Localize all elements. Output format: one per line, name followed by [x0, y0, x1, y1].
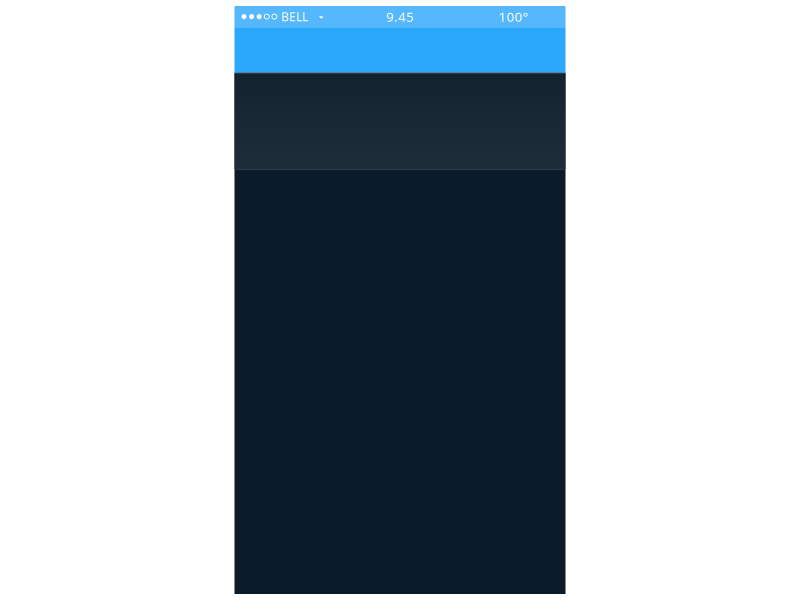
staticText: BELL — [281, 9, 308, 24]
staticText: 100° — [498, 8, 528, 25]
staticText: 9.45 — [386, 8, 414, 25]
